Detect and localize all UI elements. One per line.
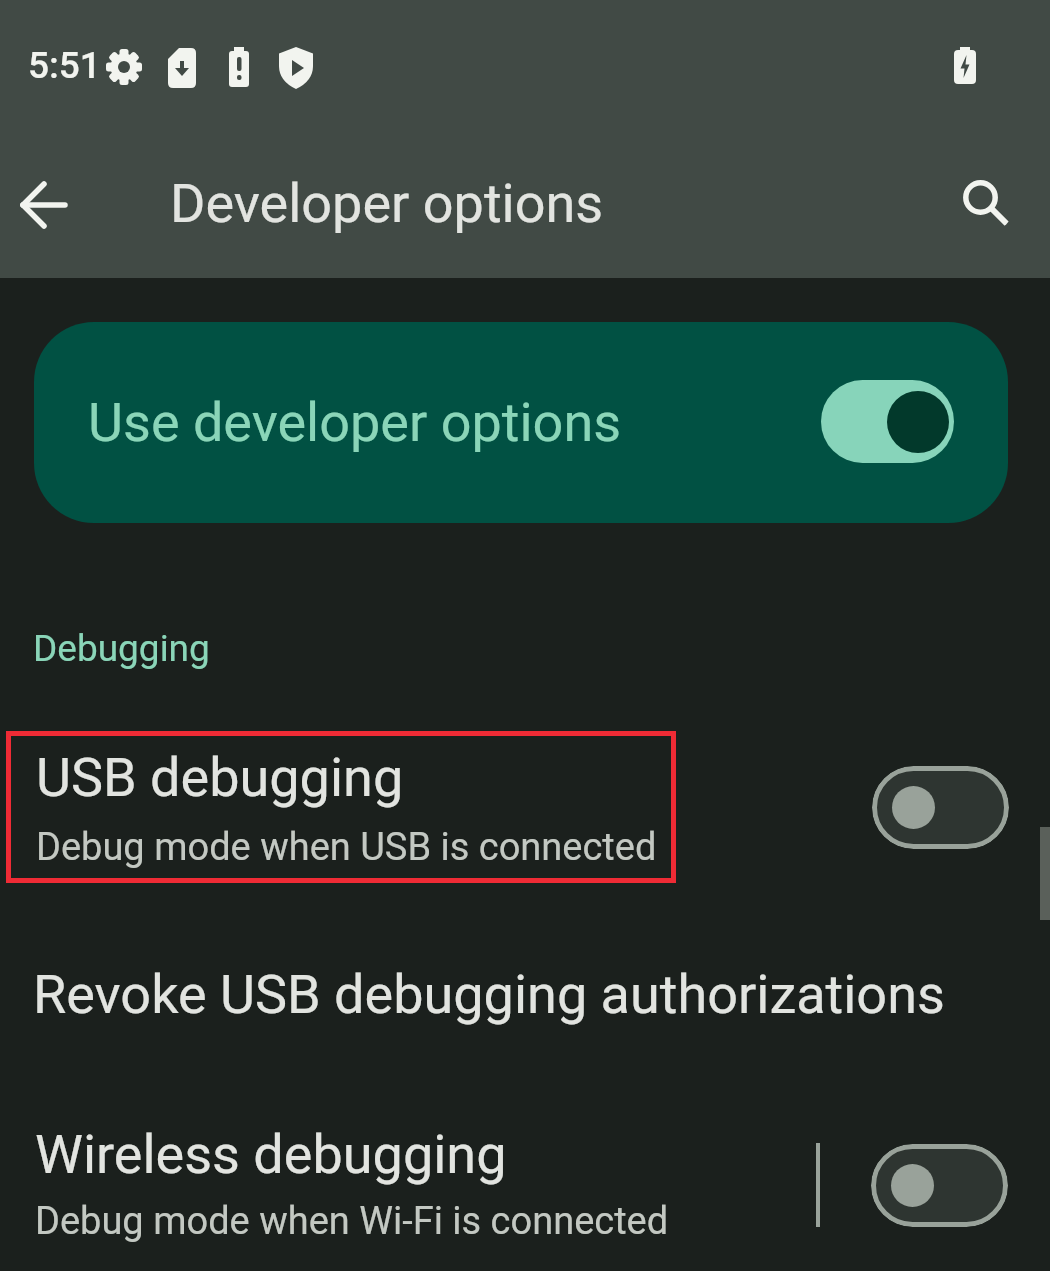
staticText: Debugging bbox=[33, 627, 210, 670]
button[interactable] bbox=[0, 1105, 1050, 1271]
button[interactable] bbox=[0, 935, 1050, 1065]
button[interactable] bbox=[871, 1144, 1008, 1227]
staticText: Debug mode when USB is connected bbox=[36, 825, 657, 870]
staticText: Debug mode when Wi-Fi is connected bbox=[35, 1199, 669, 1244]
button[interactable] bbox=[821, 380, 954, 463]
button[interactable] bbox=[950, 168, 1016, 234]
button[interactable] bbox=[872, 766, 1009, 849]
staticText: Revoke USB debugging authorizations bbox=[33, 963, 945, 1026]
staticText: Use developer options bbox=[88, 391, 622, 454]
staticText: USB debugging bbox=[36, 746, 404, 809]
button[interactable] bbox=[10, 172, 76, 238]
button[interactable]: Use developer options bbox=[34, 322, 1008, 523]
staticText: 5:51 bbox=[28, 44, 101, 87]
button[interactable] bbox=[0, 727, 1050, 887]
staticText: Developer options bbox=[170, 172, 604, 235]
staticText: Wireless debugging bbox=[35, 1123, 507, 1186]
